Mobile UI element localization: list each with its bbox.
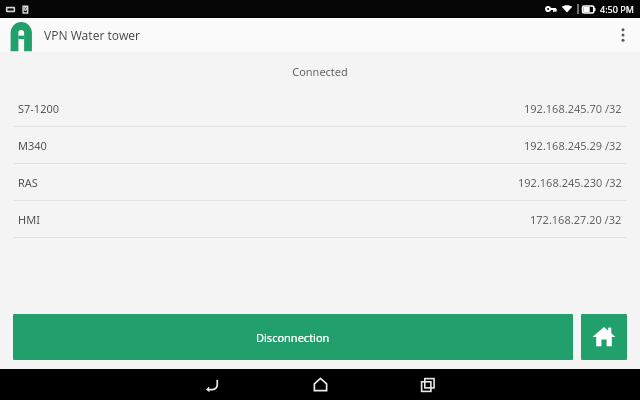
staticText: RAS [18,175,38,190]
button[interactable]: Home [285,369,355,400]
button[interactable]: Recent apps [393,369,463,400]
staticText: Disconnection [256,330,330,345]
button[interactable]: HMI [0,201,640,237]
staticText: 172.168.27.20 /32 [530,212,622,227]
staticText: 4:50 PM [600,3,634,15]
staticText: Connected [292,64,348,79]
button[interactable]: Back [177,369,247,400]
button[interactable]: Home [581,314,627,360]
staticText: 192.168.245.70 /32 [524,101,622,116]
staticText: HMI [18,212,40,227]
staticText: M340 [18,138,47,153]
button[interactable]: S7-1200 [0,90,640,126]
button[interactable]: RAS [0,164,640,200]
button[interactable]: More options [606,18,640,52]
button[interactable]: Disconnection [13,314,573,360]
staticText: S7-1200 [18,101,60,116]
button[interactable]: M340 [0,127,640,163]
staticText: VPN Water tower [44,27,141,43]
staticText: 192.168.245.230 /32 [518,175,622,190]
staticText: 192.168.245.29 /32 [524,138,622,153]
